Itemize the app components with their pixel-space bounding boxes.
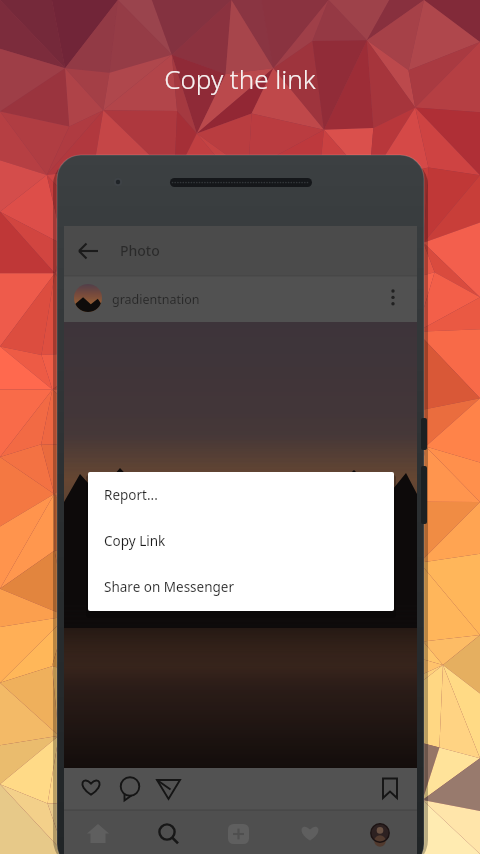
staticText: Report... [104,486,158,504]
staticText: Share on Messenger [104,578,235,596]
staticText: Copy the link [164,61,316,96]
staticText: Photo [120,241,160,260]
button[interactable]: Share [152,772,186,804]
button[interactable]: Copy Link [88,518,394,564]
button[interactable] [64,277,364,321]
button[interactable]: Save [374,772,406,804]
staticText: Copy Link [104,532,166,550]
button[interactable]: Back [71,234,107,268]
button[interactable]: New post [215,812,263,854]
staticText: gradientnation [112,291,200,308]
button[interactable]: Activity [286,812,334,854]
button[interactable]: Report... [88,472,394,518]
button[interactable]: Photo [120,241,160,260]
button[interactable]: Profile [356,812,404,854]
button[interactable]: Share on Messenger [88,564,394,610]
button[interactable]: Comment [114,772,146,804]
button[interactable]: Like [76,772,108,804]
button[interactable]: Home [74,812,122,854]
button[interactable]: More options [380,284,408,312]
button[interactable]: Search [144,812,192,854]
